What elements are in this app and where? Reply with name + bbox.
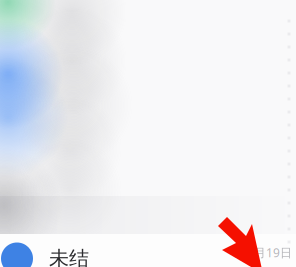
- staticText: 9月19日: [247, 244, 292, 260]
- button[interactable]: 未结: [0, 234, 296, 267]
- staticText: 未结: [49, 246, 89, 267]
